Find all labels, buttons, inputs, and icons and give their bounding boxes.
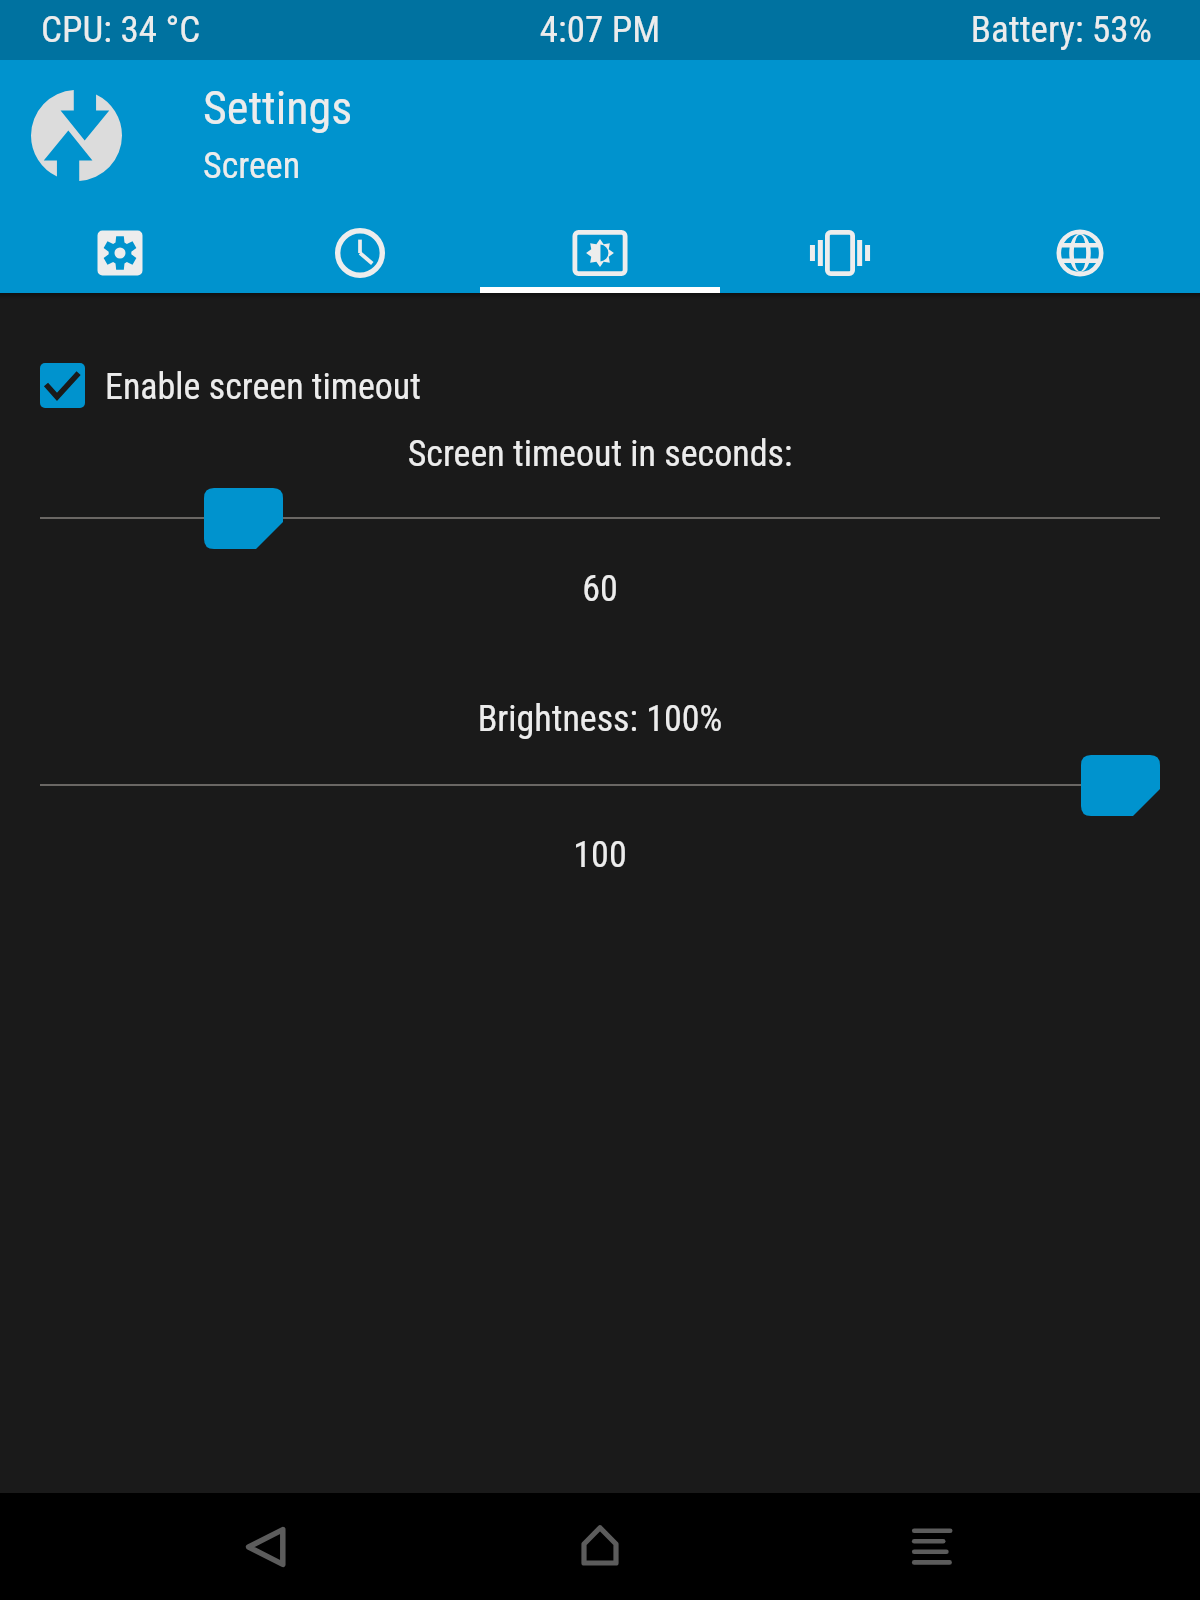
button[interactable]: Back — [212, 1493, 322, 1600]
button[interactable]: Language tab — [960, 160, 1200, 293]
button[interactable]: Home — [545, 1493, 655, 1600]
button[interactable]: Slider — [204, 488, 283, 549]
button[interactable]: Recent apps — [877, 1493, 987, 1600]
button[interactable]: Time tab — [240, 160, 480, 293]
staticText: 100 — [0, 834, 1200, 876]
button[interactable]: Slider — [1081, 755, 1160, 816]
button[interactable]: Screen tab — [480, 160, 720, 293]
staticText: 4:07 PM — [0, 8, 1200, 51]
button[interactable]: Enable screen timeout — [40, 363, 421, 408]
staticText: Brightness: 100% — [0, 698, 1200, 740]
staticText: Enable screen timeout — [105, 366, 421, 408]
staticText: Battery: 53% — [0, 8, 1152, 51]
staticText: 60 — [0, 568, 1200, 610]
staticText: Screen — [203, 145, 301, 187]
button[interactable]: Settings tab — [0, 160, 240, 293]
button[interactable]: Vibration tab — [720, 160, 960, 293]
staticText: CPU: 34 °C — [41, 8, 201, 51]
staticText: Screen timeout in seconds: — [0, 433, 1200, 475]
staticText: Settings — [203, 81, 353, 135]
